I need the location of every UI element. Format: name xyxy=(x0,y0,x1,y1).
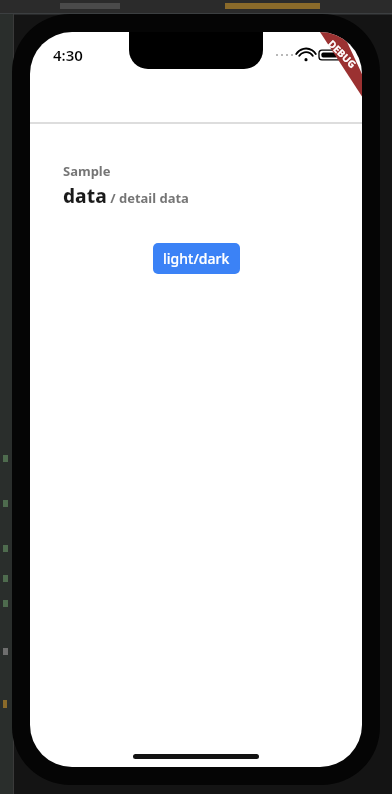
button[interactable]: Sample xyxy=(63,162,111,180)
staticText: light/dark xyxy=(163,249,230,268)
other: Battery xyxy=(319,49,344,61)
other: Wi-Fi xyxy=(298,49,314,61)
staticText: 4:30 xyxy=(53,45,83,65)
button[interactable]: data / detail data xyxy=(63,183,189,209)
other: Home xyxy=(133,754,259,759)
staticText: DEBUG xyxy=(325,37,360,71)
button[interactable]: light/dark xyxy=(153,243,240,274)
